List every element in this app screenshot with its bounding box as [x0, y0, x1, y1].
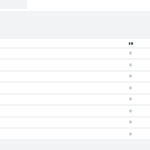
button[interactable]: List item 4 — [0, 81, 150, 93]
button[interactable]: Summary row — [0, 39, 150, 47]
button[interactable]: List item 6 — [0, 104, 150, 116]
button[interactable]: List item 5 — [0, 93, 150, 105]
button[interactable]: List item 3 — [0, 70, 150, 82]
button[interactable]: List item 8 — [0, 127, 150, 139]
button[interactable]: List item 7 — [0, 116, 150, 128]
button[interactable]: List item 1 — [0, 47, 150, 59]
button[interactable]: List item 2 — [0, 58, 150, 70]
